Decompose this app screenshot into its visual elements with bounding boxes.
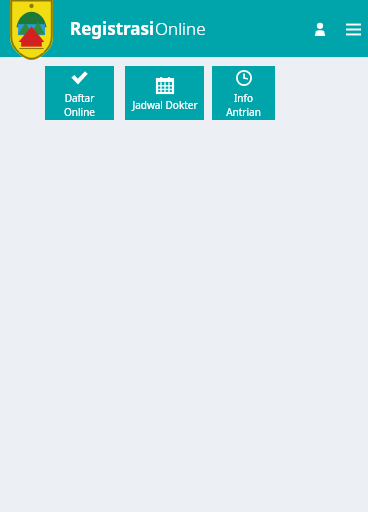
staticText: Registrasi	[70, 17, 155, 40]
staticText: Info Antrian	[216, 91, 271, 119]
button[interactable]: Menu	[341, 17, 365, 41]
staticText: Daftar Online	[49, 91, 110, 119]
button[interactable]: Logo	[10, 0, 53, 60]
button[interactable]: Jadwal Dokter	[125, 66, 204, 120]
button[interactable]: Info Antrian	[212, 66, 275, 120]
button[interactable]: Daftar Online	[45, 66, 114, 120]
button[interactable]: Account	[308, 17, 332, 41]
staticText: Online	[155, 17, 206, 40]
staticText: Jadwal Dokter	[132, 98, 198, 112]
